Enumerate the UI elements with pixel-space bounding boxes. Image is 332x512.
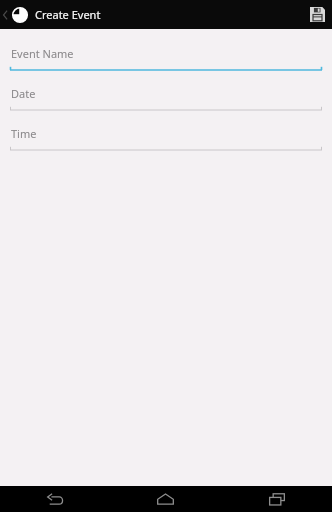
staticText: Date bbox=[11, 86, 36, 101]
staticText: Event Name bbox=[11, 46, 74, 61]
button[interactable]: Recent apps bbox=[221, 486, 332, 512]
button[interactable]: Date bbox=[0, 78, 332, 118]
button[interactable]: Back bbox=[0, 486, 110, 512]
button[interactable]: Time bbox=[0, 118, 332, 158]
button[interactable]: Create Event bbox=[0, 0, 109, 29]
staticText: Create Event bbox=[35, 7, 101, 22]
button[interactable]: Home bbox=[110, 486, 221, 512]
staticText: Time bbox=[11, 126, 37, 141]
button[interactable]: Save bbox=[302, 0, 332, 29]
button[interactable]: Event Name bbox=[0, 38, 332, 78]
